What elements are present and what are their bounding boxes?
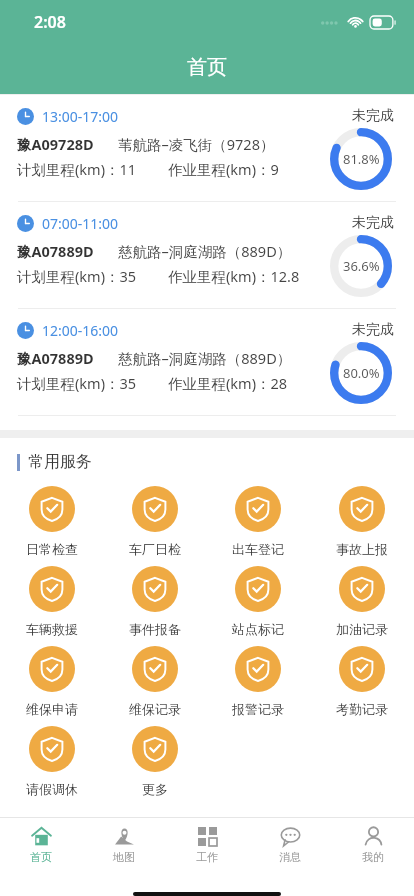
- staticText: 站点标记: [232, 621, 284, 637]
- button[interactable]: 更多: [103, 726, 206, 806]
- button[interactable]: 日常检查: [0, 486, 103, 566]
- staticText: 维保记录: [129, 701, 181, 717]
- staticText: 未完成: [352, 321, 394, 339]
- staticText: 工作: [196, 850, 218, 864]
- staticText: 事故上报: [336, 541, 388, 557]
- staticText: 未完成: [352, 107, 394, 125]
- button[interactable]: 维保记录: [103, 646, 206, 726]
- staticText: 加油记录: [336, 621, 388, 637]
- button[interactable]: 首页: [0, 825, 82, 864]
- staticText: 81.8%: [343, 150, 380, 168]
- staticText: 事件报备: [129, 621, 181, 637]
- button[interactable]: 站点标记: [206, 566, 310, 646]
- staticText: 慈航路–洞庭湖路（889D）: [118, 348, 292, 368]
- staticText: 维保申请: [26, 701, 78, 717]
- button[interactable]: 出车登记: [206, 486, 310, 566]
- button[interactable]: 请假调休: [0, 726, 103, 806]
- staticText: 07:00-11:00: [42, 214, 119, 233]
- staticText: 豫A09728D: [17, 134, 94, 154]
- staticText: 地图: [113, 850, 135, 864]
- staticText: 作业里程(km)：28: [168, 373, 288, 393]
- staticText: 首页: [30, 850, 52, 864]
- staticText: 报警记录: [232, 701, 284, 717]
- staticText: 车辆救援: [26, 621, 78, 637]
- button[interactable]: 12:00-16:00: [0, 309, 414, 415]
- staticText: 豫A07889D: [17, 348, 94, 368]
- button[interactable]: 考勤记录: [310, 646, 414, 726]
- button[interactable]: 我的: [331, 825, 414, 864]
- staticText: 请假调休: [26, 781, 78, 797]
- button[interactable]: 车厂日检: [103, 486, 206, 566]
- button[interactable]: 维保申请: [0, 646, 103, 726]
- staticText: 计划里程(km)：35: [17, 373, 137, 393]
- staticText: 常用服务: [28, 452, 92, 472]
- staticText: 2:08: [34, 11, 66, 33]
- staticText: 我的: [362, 850, 384, 864]
- button[interactable]: 报警记录: [206, 646, 310, 726]
- staticText: 未完成: [352, 214, 394, 232]
- staticText: 日常检查: [26, 541, 78, 557]
- staticText: 12:00-16:00: [42, 321, 119, 340]
- staticText: 13:00-17:00: [42, 107, 119, 126]
- staticText: 出车登记: [232, 541, 284, 557]
- button[interactable]: 事故上报: [310, 486, 414, 566]
- button[interactable]: 地图: [82, 825, 165, 864]
- staticText: 计划里程(km)：35: [17, 266, 137, 286]
- staticText: 更多: [142, 781, 168, 797]
- staticText: 车厂日检: [129, 541, 181, 557]
- button[interactable]: 工作: [165, 825, 248, 864]
- staticText: 慈航路–洞庭湖路（889D）: [118, 241, 292, 261]
- staticText: 作业里程(km)：9: [168, 159, 279, 179]
- staticText: 考勤记录: [336, 701, 388, 717]
- button[interactable]: 07:00-11:00: [0, 202, 414, 308]
- staticText: 计划里程(km)：11: [17, 159, 137, 179]
- button[interactable]: 事件报备: [103, 566, 206, 646]
- staticText: 首页: [187, 55, 227, 80]
- staticText: 作业里程(km)：12.8: [168, 266, 300, 286]
- staticText: 豫A07889D: [17, 241, 94, 261]
- staticText: 36.6%: [343, 257, 380, 275]
- button[interactable]: 13:00-17:00: [0, 95, 414, 201]
- staticText: 消息: [279, 850, 301, 864]
- button[interactable]: 消息: [248, 825, 331, 864]
- button[interactable]: 加油记录: [310, 566, 414, 646]
- staticText: 80.0%: [343, 364, 380, 382]
- staticText: 苇航路–凌飞街（9728）: [118, 134, 275, 154]
- button[interactable]: 车辆救援: [0, 566, 103, 646]
